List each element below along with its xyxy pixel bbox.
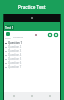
button[interactable]: Home (30, 94, 34, 98)
button[interactable]: Stat (48, 33, 52, 37)
staticText: Question 2 (8, 45, 22, 49)
staticText: Question 4 (8, 53, 22, 57)
staticText: score (5, 37, 11, 40)
button[interactable]: Question 6 (4, 61, 60, 65)
button[interactable]: Back (12, 94, 16, 98)
button[interactable]: Question 2 (4, 45, 60, 49)
button[interactable]: Practice Test (0, 0, 64, 14)
button[interactable]: Question 3 (4, 49, 60, 53)
button[interactable]: Score (5, 32, 11, 40)
button[interactable]: Recents (48, 94, 52, 98)
button[interactable]: Question 5 (4, 57, 60, 61)
button[interactable]: Stat (54, 33, 58, 37)
button[interactable]: Banner (4, 14, 60, 22)
button[interactable]: Test 1 (5, 25, 14, 30)
button[interactable]: Question 7 (4, 65, 60, 69)
staticText: Question 7 (8, 65, 22, 69)
button[interactable]: Question 4 (4, 53, 60, 57)
staticText: answered (13, 36, 24, 39)
staticText: Question 1 (8, 41, 22, 45)
staticText: Test 1 (5, 26, 14, 30)
staticText: Practice Test (18, 4, 46, 10)
staticText: Question 5 (8, 57, 22, 61)
button[interactable]: Question 1 (4, 41, 60, 45)
staticText: Question 6 (8, 61, 22, 65)
staticText: Question 3 (8, 49, 22, 53)
